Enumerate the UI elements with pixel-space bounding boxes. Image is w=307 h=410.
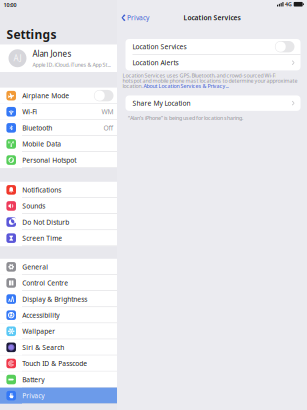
staticText: General — [22, 262, 48, 271]
staticText: Notifications — [22, 185, 61, 194]
staticText: Apple ID, iCloud, iTunes & App St... — [32, 61, 110, 68]
button[interactable]: Battery — [0, 371, 117, 388]
staticText: “Alan’s iPhone” is being used for locati… — [128, 114, 243, 121]
staticText: Location Services — [132, 42, 186, 51]
staticText: Location Alerts — [132, 58, 178, 67]
staticText: Wallpaper — [22, 327, 55, 336]
button[interactable]: Mobile Data — [0, 136, 117, 152]
button[interactable]: Siri & Search — [0, 339, 117, 355]
staticText: WM — [101, 107, 113, 116]
staticText: Do Not Disturb — [22, 218, 69, 226]
staticText: Sounds — [22, 201, 45, 210]
button[interactable]: Airplane Mode — [0, 88, 117, 104]
staticText: Location Services uses GPS, Bluetooth, a… — [122, 72, 276, 79]
button[interactable]: Control Centre — [0, 275, 117, 291]
staticText: Alan Jones — [32, 48, 71, 59]
button[interactable]: General — [0, 259, 117, 275]
button[interactable]: Personal Hotspot — [0, 152, 117, 168]
staticText: Share My Location — [132, 99, 190, 108]
button[interactable]: Touch ID & Passcode — [0, 355, 117, 371]
staticText: Location Services — [183, 13, 240, 22]
staticText: hotspot and mobile phone mast locations … — [122, 77, 297, 84]
button[interactable]: Do Not Disturb — [0, 214, 117, 230]
button[interactable]: Sounds — [0, 198, 117, 214]
staticText: Display & Brightness — [22, 295, 87, 303]
button[interactable]: Screen Time — [0, 230, 117, 246]
staticText: Off — [103, 123, 113, 132]
staticText: Personal Hotspot — [22, 156, 76, 164]
button[interactable]: Location Alerts — [125, 55, 300, 70]
staticText: Privacy — [22, 391, 44, 400]
staticText: Screen Time — [22, 234, 62, 243]
staticText: Control Centre — [22, 278, 68, 287]
staticText: Accessibility — [22, 311, 59, 320]
button[interactable]: AJ — [0, 44, 117, 72]
button[interactable]: About Location Services & Privacy... — [143, 82, 228, 89]
button[interactable]: Share My Location — [125, 95, 300, 111]
staticText: Bluetooth — [22, 123, 52, 132]
staticText: Battery — [22, 375, 44, 384]
staticText: Siri & Search — [22, 343, 64, 352]
staticText: About Location Services & Privacy... — [143, 82, 228, 89]
staticText: Mobile Data — [22, 139, 61, 148]
staticText: Touch ID & Passcode — [22, 359, 87, 368]
button[interactable]: Location Services — [125, 39, 300, 54]
button[interactable]: Privacy — [117, 10, 149, 25]
button[interactable]: Wi-Fi — [0, 104, 117, 120]
staticText: 10:00 — [3, 1, 16, 9]
button[interactable]: Wallpaper — [0, 323, 117, 339]
staticText: AJ — [13, 53, 21, 63]
staticText: Wi-Fi — [22, 107, 37, 116]
button[interactable]: Notifications — [0, 182, 117, 198]
button[interactable]: Privacy — [0, 388, 117, 404]
button[interactable]: Display & Brightness — [0, 291, 117, 307]
button[interactable]: Accessibility — [0, 307, 117, 323]
staticText: Airplane Mode — [22, 91, 69, 100]
staticText: Settings — [7, 26, 57, 42]
staticText: Privacy — [127, 13, 149, 22]
staticText: location. — [122, 82, 143, 89]
staticText: 4G — [285, 1, 292, 8]
button[interactable]: Bluetooth — [0, 120, 117, 136]
